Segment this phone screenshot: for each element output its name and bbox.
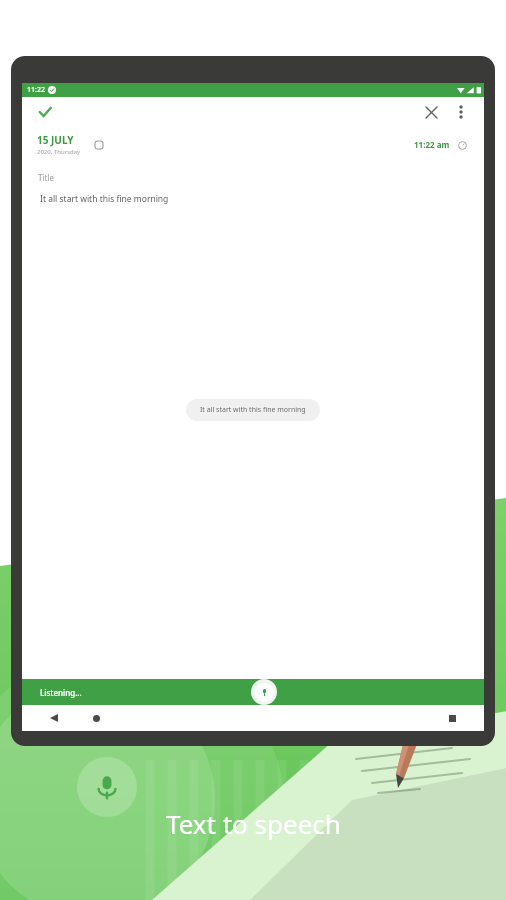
- staticText: 11:22: [27, 85, 45, 95]
- staticText: It all start with this fine morning: [40, 193, 169, 205]
- button[interactable]: It all start with this fine morning: [186, 399, 320, 421]
- button[interactable]: More options: [450, 101, 472, 123]
- button[interactable]: Reminder: [91, 137, 107, 153]
- staticText: 2020, Thursday: [37, 148, 81, 156]
- button[interactable]: Close: [420, 101, 442, 123]
- button[interactable]: Recent apps: [442, 708, 462, 728]
- button[interactable]: Back: [44, 708, 64, 728]
- staticText: 15 JULY: [37, 133, 74, 147]
- staticText: 11:22 am: [414, 139, 450, 150]
- button[interactable]: Save: [34, 101, 56, 123]
- button[interactable]: Home: [86, 708, 106, 728]
- staticText: Title: [38, 172, 54, 183]
- button[interactable]: Alarm: [455, 138, 469, 152]
- staticText: Listening...: [40, 687, 82, 698]
- button[interactable]: Microphone: [77, 757, 137, 817]
- button[interactable]: Stop listening: [251, 679, 277, 705]
- staticText: Text to speech: [166, 806, 341, 841]
- staticText: It all start with this fine morning: [200, 405, 306, 415]
